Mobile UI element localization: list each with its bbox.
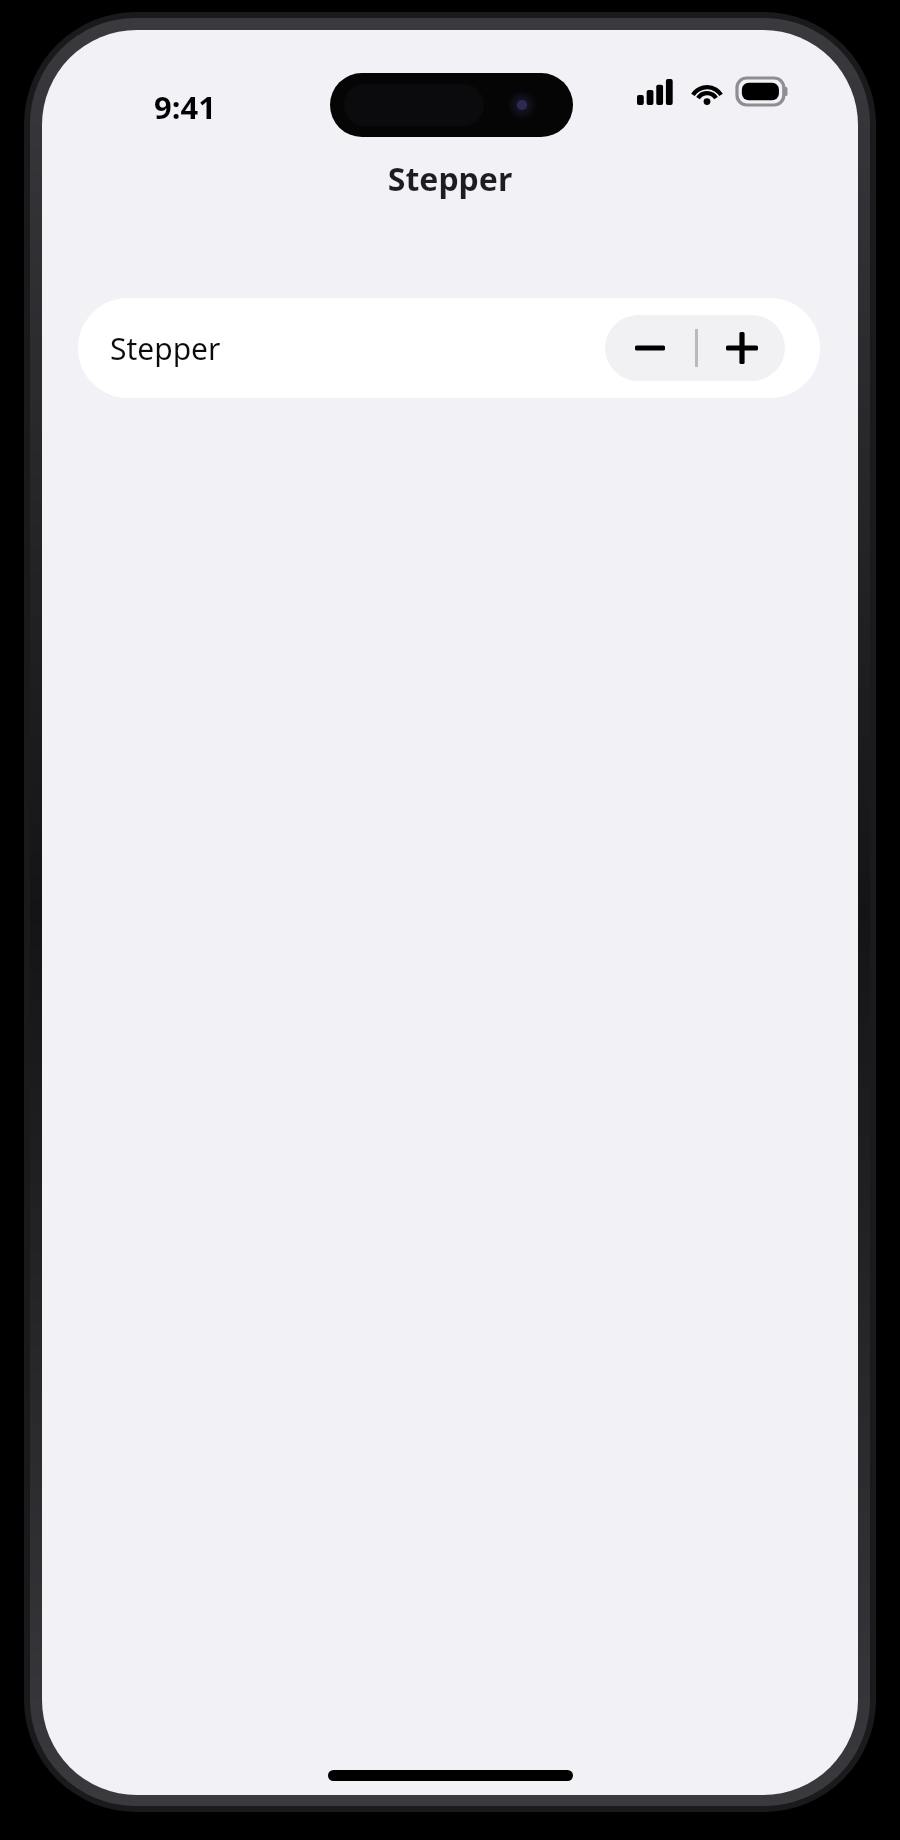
staticText: 9:41 [154, 86, 216, 128]
button[interactable]: Increment [698, 315, 785, 381]
staticText: Stepper [110, 328, 221, 369]
button[interactable]: Decrement [605, 315, 695, 381]
staticText: Stepper [42, 157, 858, 201]
